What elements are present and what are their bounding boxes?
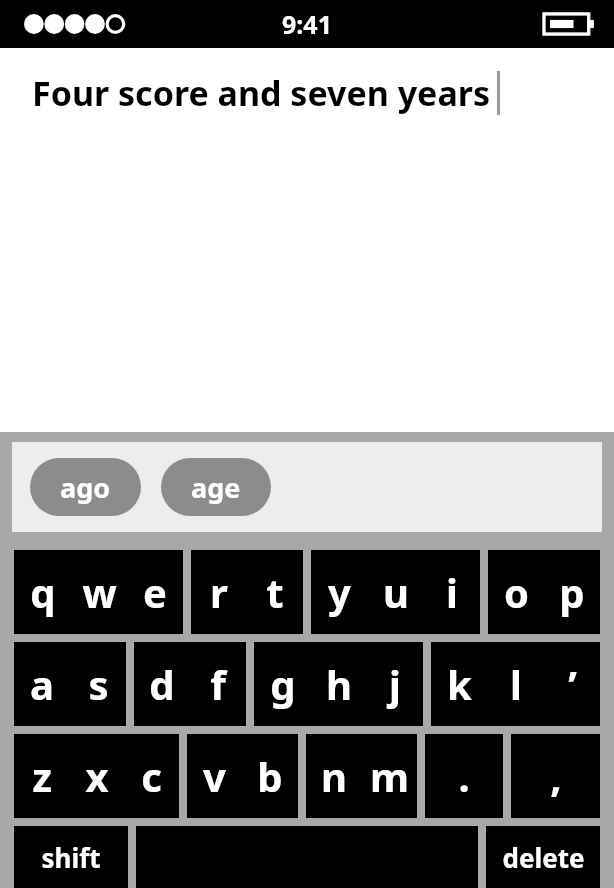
button[interactable]: k xyxy=(431,642,488,726)
staticText: r xyxy=(210,565,228,619)
button[interactable]: r xyxy=(191,550,247,634)
button[interactable]: . xyxy=(425,734,503,818)
staticText: c xyxy=(141,749,162,803)
staticText: l xyxy=(510,657,522,711)
staticText: e xyxy=(143,565,167,619)
button[interactable]: ’ xyxy=(544,642,600,726)
button[interactable]: g xyxy=(254,642,311,726)
staticText: ago xyxy=(60,469,111,506)
button[interactable]: u xyxy=(368,550,424,634)
button[interactable]: m xyxy=(361,734,417,818)
button[interactable]: h xyxy=(311,642,367,726)
staticText: s xyxy=(88,657,109,711)
staticText: k xyxy=(447,657,472,711)
staticText: q xyxy=(30,565,56,619)
staticText: Four score and seven years xyxy=(32,70,491,116)
staticText: u xyxy=(383,565,409,619)
staticText: , xyxy=(550,749,562,803)
button[interactable]: b xyxy=(242,734,298,818)
button[interactable]: d xyxy=(134,642,190,726)
button[interactable]: o xyxy=(488,550,544,634)
button[interactable]: ago xyxy=(30,458,141,516)
staticText: i xyxy=(446,565,458,619)
staticText: j xyxy=(389,657,401,711)
button[interactable]: q xyxy=(14,550,71,634)
staticText: a xyxy=(30,657,54,711)
staticText: 9:41 xyxy=(282,7,332,41)
staticText: . xyxy=(458,749,470,803)
staticText: y xyxy=(328,565,351,619)
staticText: t xyxy=(266,565,284,619)
staticText: g xyxy=(270,657,296,711)
button[interactable]: i xyxy=(424,550,480,634)
staticText: x xyxy=(85,749,109,803)
button[interactable]: c xyxy=(124,734,179,818)
button[interactable]: x xyxy=(69,734,124,818)
button[interactable]: w xyxy=(71,550,127,634)
button[interactable]: z xyxy=(14,734,69,818)
button[interactable]: j xyxy=(367,642,423,726)
button[interactable]: delete xyxy=(486,826,600,888)
button[interactable]: e xyxy=(127,550,183,634)
button[interactable]: n xyxy=(306,734,361,818)
staticText: n xyxy=(321,749,347,803)
button[interactable]: f xyxy=(190,642,246,726)
button[interactable]: a xyxy=(14,642,70,726)
staticText: m xyxy=(370,749,409,803)
button[interactable]: l xyxy=(488,642,544,726)
staticText: shift xyxy=(41,840,101,875)
staticText: o xyxy=(504,565,529,619)
staticText: p xyxy=(559,565,585,619)
staticText: z xyxy=(32,749,52,803)
staticText: ’ xyxy=(568,657,577,711)
staticText: v xyxy=(203,749,226,803)
button[interactable]: shift xyxy=(14,826,128,888)
button[interactable]: s xyxy=(70,642,126,726)
button[interactable]: y xyxy=(311,550,368,634)
button[interactable]: age xyxy=(161,458,271,516)
button[interactable]: p xyxy=(544,550,600,634)
staticText: w xyxy=(82,565,117,619)
staticText: d xyxy=(149,657,175,711)
button[interactable]: , xyxy=(511,734,600,818)
staticText: delete xyxy=(502,840,585,875)
staticText: age xyxy=(191,469,241,506)
staticText: b xyxy=(257,749,283,803)
staticText: h xyxy=(326,657,352,711)
staticText: f xyxy=(210,657,226,711)
button[interactable]: v xyxy=(187,734,242,818)
button[interactable]: t xyxy=(247,550,303,634)
